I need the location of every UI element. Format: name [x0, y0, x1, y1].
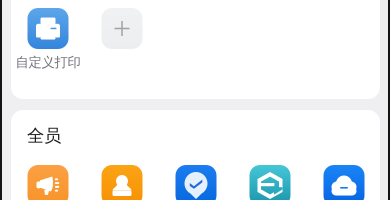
button[interactable]: 人事 — [101, 165, 142, 200]
button[interactable]: 通知公告 — [27, 165, 68, 200]
button[interactable]: 协同 — [249, 165, 290, 200]
button[interactable]: 云盘 — [323, 165, 364, 200]
staticText: 自定义打印 — [15, 54, 80, 70]
button[interactable]: 添加 — [101, 8, 142, 49]
staticText: 全员 — [27, 125, 61, 146]
button[interactable]: 自定义打印 — [11, 8, 85, 70]
button[interactable]: 签到 — [175, 165, 216, 200]
